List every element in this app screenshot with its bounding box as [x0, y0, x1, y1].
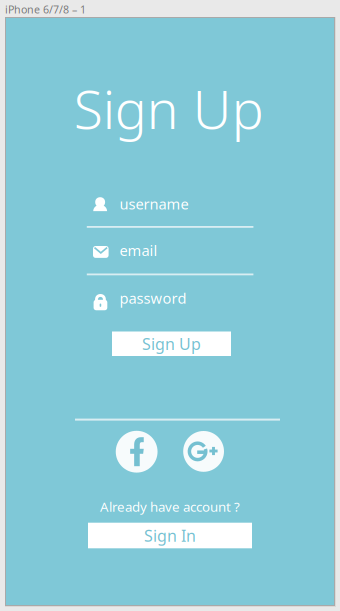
button[interactable]: Sign up with Google — [183, 431, 224, 472]
button[interactable]: Sign Up — [112, 331, 231, 356]
staticText: Sign Up — [142, 333, 201, 354]
staticText: iPhone 6/7/8 – 1 — [5, 2, 86, 17]
staticText: password — [119, 288, 186, 308]
staticText: Sign In — [144, 525, 196, 546]
button[interactable]: Sign In — [88, 523, 252, 548]
staticText: email — [119, 241, 157, 260]
button[interactable]: Sign up with Facebook — [115, 431, 158, 473]
staticText: username — [120, 194, 189, 214]
staticText: Already have account ? — [100, 498, 240, 515]
staticText: Sign Up — [74, 73, 264, 144]
